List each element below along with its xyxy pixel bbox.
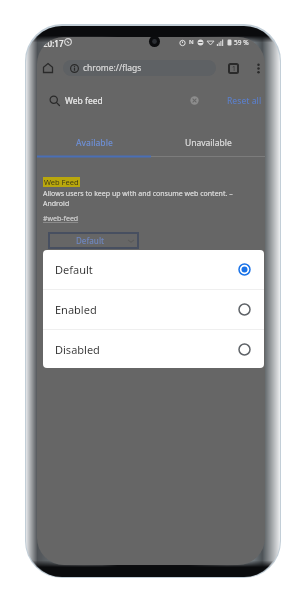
staticText: N xyxy=(189,38,194,46)
staticText: 1 xyxy=(232,64,236,73)
staticText: 59 % xyxy=(234,38,249,46)
staticText: #web-feed xyxy=(43,214,79,224)
button[interactable]: Tabs xyxy=(225,60,242,77)
button[interactable]: Default xyxy=(43,250,264,289)
button[interactable]: Default xyxy=(48,232,139,249)
button[interactable]: Reset all xyxy=(223,92,265,110)
button[interactable]: chrome://flags xyxy=(63,60,216,76)
button[interactable]: Unavailable xyxy=(151,129,265,156)
staticText: Default xyxy=(76,235,105,246)
staticText: Allows users to keep up with and consume… xyxy=(43,189,265,209)
button[interactable]: Enabled xyxy=(43,290,264,329)
staticText: Enabled xyxy=(55,302,97,317)
staticText: Default xyxy=(55,262,93,277)
button[interactable]: More options xyxy=(250,60,265,77)
staticText: Unavailable xyxy=(185,137,232,149)
button[interactable]: Home xyxy=(41,61,55,75)
staticText: 20:17 xyxy=(43,38,64,49)
staticText: Web feed xyxy=(65,95,103,107)
staticText: Disabled xyxy=(55,342,100,357)
staticText: Available xyxy=(76,137,113,149)
button[interactable]: Clear search xyxy=(189,95,200,106)
button[interactable]: Available xyxy=(37,129,151,156)
button[interactable]: Disabled xyxy=(43,330,264,368)
staticText: chrome://flags xyxy=(83,62,142,74)
staticText: Reset all xyxy=(227,95,262,107)
staticText: Web Feed xyxy=(44,177,79,187)
